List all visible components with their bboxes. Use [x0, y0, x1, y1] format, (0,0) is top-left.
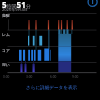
staticText: 9:00	[72, 75, 79, 79]
button[interactable]: さらに詳細データを表示	[26, 85, 78, 91]
staticText: 6:00	[50, 75, 57, 79]
button[interactable]	[87, 0, 98, 9]
staticText: さらに詳細データを表示	[26, 85, 78, 91]
staticText: 深い	[2, 62, 10, 67]
staticText: 3:00	[26, 75, 33, 79]
staticText: 0:00	[3, 75, 10, 79]
staticText: 5時間51分	[2, 0, 31, 10]
staticText: 2025年9月4日	[2, 7, 28, 12]
staticText: コア	[2, 48, 10, 53]
staticText: レム	[2, 32, 10, 37]
staticText: 覚醒	[2, 13, 10, 18]
